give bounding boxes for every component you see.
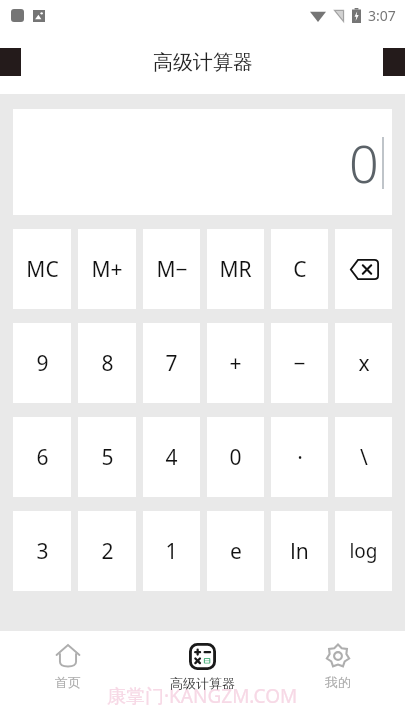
staticText: 首页 [55,674,81,690]
button[interactable]: e [207,511,264,591]
staticText: 我的 [325,674,351,690]
staticText: 6 [36,443,49,472]
staticText: x [358,349,370,378]
staticText: C [293,255,307,284]
button[interactable]: MR [207,229,264,309]
staticText: 高级计算器 [153,50,253,75]
staticText: 7 [165,349,178,378]
button[interactable]: − [271,323,328,403]
button[interactable]: 9 [13,323,71,403]
staticText: 5 [101,443,114,472]
button[interactable]: M+ [78,229,136,309]
button[interactable]: 0 [207,417,264,497]
staticText: ln [290,537,309,566]
staticText: \ [360,443,368,472]
button[interactable]: 2 [78,511,136,591]
staticText: 0 [349,127,379,198]
staticText: − [293,349,306,378]
button[interactable]: 3 [13,511,71,591]
button[interactable]: · [271,417,328,497]
button[interactable]: 1 [143,511,200,591]
button[interactable]: 6 [13,417,71,497]
button[interactable]: 5 [78,417,136,497]
staticText: e [230,537,242,566]
button[interactable]: C [271,229,328,309]
staticText: 4 [165,443,178,472]
staticText: MR [219,255,252,284]
button[interactable]: 我的 [270,639,405,694]
button[interactable]: Backspace [335,229,392,309]
staticText: 1 [165,537,178,566]
staticText: 高级计算器 [170,675,235,691]
staticText: 2 [101,537,114,566]
button[interactable]: MC [13,229,71,309]
staticText: 3 [36,537,49,566]
staticText: 0 [229,443,242,472]
button[interactable]: M− [143,229,200,309]
staticText: + [229,349,242,378]
button[interactable]: + [207,323,264,403]
button[interactable]: 4 [143,417,200,497]
staticText: MC [26,255,59,284]
staticText: · [297,443,303,472]
button[interactable]: 7 [143,323,200,403]
staticText: M+ [91,255,123,284]
button[interactable]: log [335,511,392,591]
button[interactable]: 首页 [0,639,135,694]
staticText: 8 [101,349,114,378]
staticText: 9 [36,349,49,378]
staticText: 3:07 [368,6,396,25]
button[interactable]: 高级计算器 [135,639,270,695]
staticText: M− [156,255,188,284]
button[interactable]: ln [271,511,328,591]
staticText: log [349,538,378,564]
button[interactable]: x [335,323,392,403]
button[interactable]: \ [335,417,392,497]
button[interactable]: 8 [78,323,136,403]
staticText: 康掌门·KANGZM.COM [107,683,298,709]
